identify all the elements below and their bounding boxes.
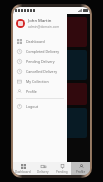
staticText: Logout bbox=[26, 104, 38, 109]
staticText: Delivery bbox=[37, 170, 49, 174]
staticText: Pending bbox=[56, 170, 68, 174]
button[interactable]: Pending bbox=[52, 162, 71, 175]
button[interactable]: Profile bbox=[13, 86, 67, 96]
staticText: Profile bbox=[76, 170, 86, 174]
button[interactable]: Pending Delivery bbox=[13, 56, 67, 66]
button[interactable]: Completed Delivery bbox=[13, 46, 67, 56]
button[interactable]: Delivery bbox=[33, 162, 52, 175]
staticText: admin@domain.com bbox=[28, 25, 60, 29]
button[interactable]: Cancelled Delivery bbox=[13, 66, 67, 76]
staticText: Completed Delivery bbox=[26, 49, 60, 54]
button[interactable] bbox=[16, 17, 87, 47]
staticText: Profile bbox=[26, 89, 37, 94]
button[interactable]: Logout bbox=[13, 101, 67, 111]
button[interactable]: Dashboard bbox=[13, 36, 67, 46]
button[interactable] bbox=[16, 83, 87, 105]
staticText: Cancelled Delivery bbox=[26, 69, 57, 74]
staticText: Pending Delivery bbox=[26, 59, 55, 64]
button[interactable] bbox=[16, 50, 87, 80]
button[interactable]: John Martin bbox=[16, 18, 65, 29]
button[interactable] bbox=[16, 108, 87, 138]
staticText: My Collection bbox=[26, 79, 49, 84]
staticText: John Martin bbox=[28, 18, 52, 24]
staticText: Dashboard bbox=[15, 170, 31, 174]
staticText: Dashboard bbox=[26, 39, 45, 44]
button[interactable]: Profile bbox=[71, 162, 90, 175]
button[interactable]: My Collection bbox=[13, 76, 67, 86]
button[interactable]: Dashboard bbox=[13, 162, 33, 175]
